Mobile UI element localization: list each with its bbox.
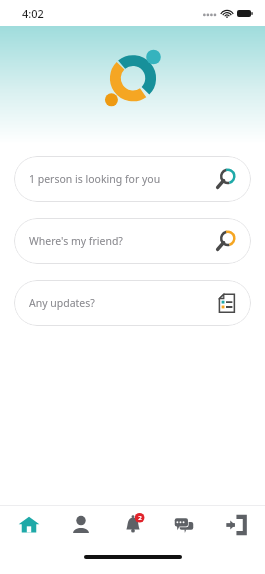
staticText: 1 person is looking for you bbox=[29, 172, 215, 186]
button[interactable]: Messages bbox=[161, 506, 207, 544]
button[interactable]: Notifications bbox=[110, 506, 156, 544]
button[interactable]: Any updates? bbox=[14, 280, 251, 326]
staticText: 2 bbox=[138, 514, 142, 522]
button[interactable]: Home bbox=[6, 506, 52, 544]
button[interactable]: 1 person is looking for you bbox=[14, 156, 251, 202]
button[interactable]: Where's my friend? bbox=[14, 218, 251, 264]
button[interactable]: Profile bbox=[58, 506, 104, 544]
staticText: Any updates? bbox=[29, 296, 215, 310]
staticText: Where's my friend? bbox=[29, 234, 215, 248]
button[interactable]: Log out bbox=[213, 506, 259, 544]
staticText: 4:02 bbox=[22, 6, 44, 21]
